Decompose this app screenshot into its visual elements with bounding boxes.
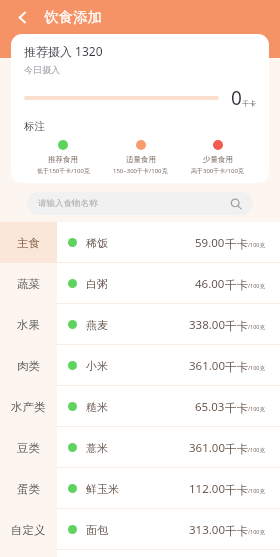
staticText: /100克 [248,528,265,536]
staticText: /100克 [248,446,265,454]
staticText: 千卡 [225,442,248,456]
staticText: /100克 [248,364,265,372]
button[interactable]: 自定义 [0,509,57,550]
staticText: 糙米 [86,400,108,414]
staticText: 低于150千卡/100克 [37,167,90,175]
staticText: 自定义 [11,523,46,537]
button[interactable]: 糙米 [57,386,280,427]
staticText: 水果 [17,318,40,332]
staticText: 饮食添加 [44,8,102,26]
button[interactable]: 蔬菜 [0,263,57,304]
staticText: /100克 [248,487,265,495]
staticText: 推荐摄入 1320 [24,43,103,59]
button[interactable]: 肉类 [0,345,57,386]
staticText: 燕麦 [86,318,108,332]
button[interactable]: 燕麦 [57,304,280,345]
staticText: 338.00 [189,317,225,333]
staticText: 150~300千卡/100克 [113,167,168,175]
staticText: 112.00 [189,481,225,497]
staticText: 0 [231,85,242,111]
staticText: 千卡 [242,99,256,108]
button[interactable]: 水果 [0,304,57,345]
button[interactable]: 鲜玉米 [57,468,280,509]
staticText: 千卡 [225,278,248,292]
staticText: 标注 [24,120,45,133]
staticText: 薏米 [86,441,108,455]
staticText: /100克 [248,241,265,249]
staticText: 46.00 [195,276,225,292]
staticText: 313.00 [189,522,225,538]
staticText: 少量食用 [203,155,233,164]
staticText: 59.00 [195,235,225,251]
staticText: 千卡 [225,401,248,415]
staticText: 水产类 [11,400,46,414]
button[interactable]: 稀饭 [57,222,280,263]
staticText: 蛋类 [17,482,40,496]
button[interactable]: 主食 [0,222,57,263]
staticText: 豆类 [17,441,40,455]
staticText: 千卡 [225,524,248,538]
staticText: 蔬菜 [17,277,40,291]
staticText: 肉类 [17,359,40,373]
staticText: 千卡 [225,360,248,374]
staticText: /100克 [248,405,265,413]
staticText: 65.03 [195,399,225,415]
button[interactable]: 面包 [57,509,280,550]
button[interactable]: 薏米 [57,427,280,468]
staticText: 鲜玉米 [86,482,119,496]
staticText: 稀饭 [86,236,108,250]
staticText: 主食 [17,236,40,250]
staticText: 千卡 [225,483,248,497]
staticText: 361.00 [189,358,225,374]
button[interactable]: 水产类 [0,386,57,427]
button[interactable]: 请输入食物名称 [27,192,253,215]
staticText: /100克 [248,323,265,331]
button[interactable]: 豆类 [0,427,57,468]
staticText: /100克 [248,282,265,290]
staticText: 361.00 [189,440,225,456]
staticText: 今日摄入 [24,64,60,75]
staticText: 请输入食物名称 [38,198,98,209]
staticText: 适量食用 [126,155,156,164]
button[interactable]: 白粥 [57,263,280,304]
staticText: 千卡 [225,319,248,333]
staticText: 高于300千卡/100克 [191,167,244,175]
staticText: 面包 [86,523,108,537]
button[interactable]: 蛋类 [0,468,57,509]
staticText: 白粥 [86,277,108,291]
button[interactable]: 返回 [9,4,35,30]
staticText: 小米 [86,359,108,373]
button[interactable]: 小米 [57,345,280,386]
staticText: 推荐食用 [48,155,78,164]
staticText: 千卡 [225,237,248,251]
